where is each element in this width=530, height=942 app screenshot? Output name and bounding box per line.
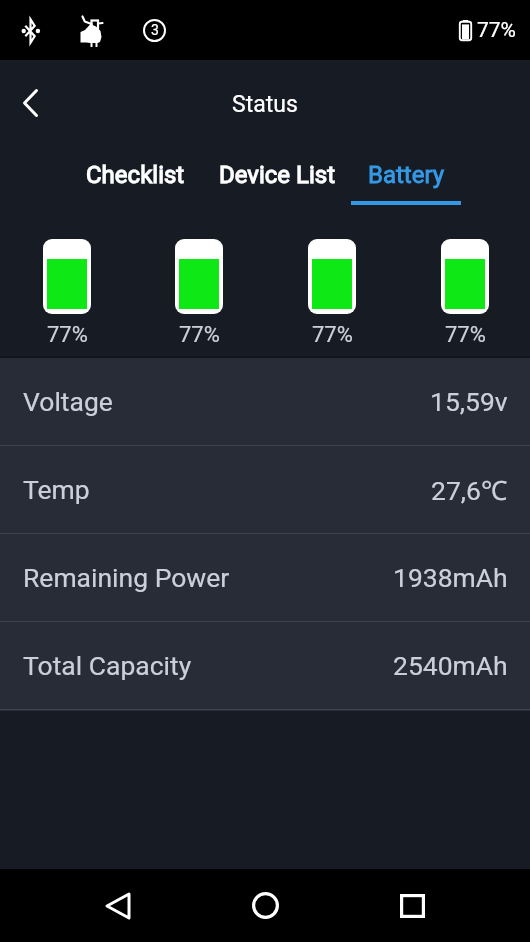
button[interactable]: Remaining Power [0,534,530,621]
button[interactable]: Device List [209,145,345,205]
button[interactable]: Checklist [80,145,190,205]
button[interactable]: Back [6,79,54,127]
button[interactable]: Home [235,869,295,942]
staticText: 15,59v [430,386,508,417]
staticText: 77% [47,322,88,348]
button[interactable]: Total Capacity [0,622,530,709]
staticText: Status [232,91,298,118]
staticText: 77% [179,322,220,348]
staticText: 77% [477,18,516,43]
button[interactable]: Recents [382,869,442,942]
staticText: Temp [23,474,90,505]
staticText: Checklist [86,161,185,189]
staticText: Voltage [23,386,113,417]
staticText: Battery [368,161,445,189]
staticText: 1938mAh [393,562,508,593]
staticText: 2540mAh [393,650,508,681]
button[interactable]: Voltage [0,358,530,445]
button[interactable]: Back [88,869,148,942]
staticText: Device List [219,161,336,189]
button[interactable]: Temp [0,446,530,533]
staticText: 77% [312,322,353,348]
staticText: 27,6℃ [431,472,508,508]
staticText: Total Capacity [23,650,192,681]
staticText: 3 [151,22,159,38]
button[interactable]: Battery [351,145,462,205]
staticText: Remaining Power [23,562,230,593]
staticText: 77% [445,322,486,348]
